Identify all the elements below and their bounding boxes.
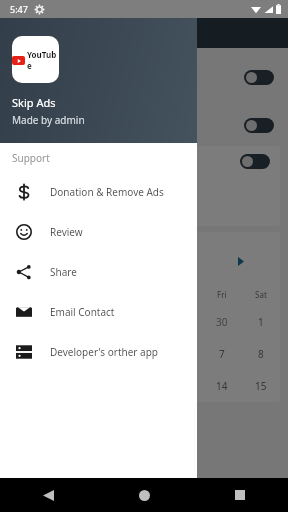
button[interactable]: Developer's orther app [0, 332, 197, 372]
staticText: 4 [102, 347, 108, 361]
button[interactable]: Donation & Remove Ads [0, 172, 197, 212]
staticText: Skip Ads [12, 95, 56, 110]
button[interactable]: Share [0, 252, 197, 292]
staticText: Enable skip ads [12, 70, 85, 84]
staticText: 2 [24, 347, 30, 361]
staticText: Review [50, 225, 83, 239]
staticText: 8 [258, 347, 264, 361]
staticText: Sat [255, 289, 267, 300]
staticText: Share [50, 265, 77, 279]
staticText: August 2024 [20, 254, 79, 268]
staticText: 14 [216, 379, 228, 393]
button[interactable]: Home [96, 478, 192, 512]
staticText: 5 [141, 347, 147, 361]
staticText: 1 [258, 315, 264, 329]
button[interactable]: Recent apps [192, 478, 288, 512]
staticText: Donation & Remove Ads [50, 185, 164, 199]
staticText: Email Contact [50, 305, 115, 319]
button[interactable]: Back [0, 478, 96, 512]
staticText: Support [12, 151, 50, 165]
staticText: 25 [99, 315, 111, 329]
staticText: 7 [219, 347, 225, 361]
staticText: YouTube [27, 49, 59, 71]
staticText: 23 [21, 315, 33, 329]
button[interactable]: Email Contact [0, 292, 197, 332]
staticText: 3 [63, 347, 69, 361]
staticText: 24 [60, 315, 72, 329]
staticText: Developer's orther app [50, 345, 158, 359]
staticText: Fri [217, 289, 227, 300]
staticText: Enable skip ads [12, 118, 85, 132]
staticText: Made by admin [12, 113, 85, 127]
staticText: 30 [216, 315, 228, 329]
staticText: 15 [255, 379, 267, 393]
button[interactable]: Review [0, 212, 197, 252]
staticText: 5:47 [10, 3, 28, 15]
